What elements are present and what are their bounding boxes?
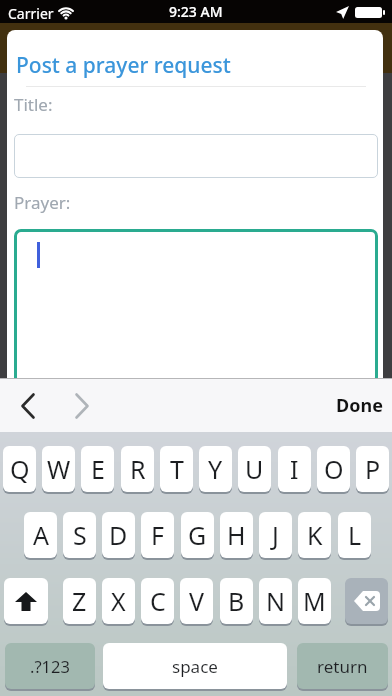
staticText: A xyxy=(33,518,49,552)
button[interactable]: space xyxy=(103,643,287,689)
staticText: R xyxy=(130,452,146,486)
staticText: L xyxy=(348,518,362,552)
staticText: Prayer: xyxy=(14,191,71,214)
button[interactable]: T xyxy=(160,446,193,492)
staticText: K xyxy=(307,518,323,552)
button[interactable]: D xyxy=(102,512,135,558)
button[interactable]: O xyxy=(317,446,350,492)
button[interactable]: .?123 xyxy=(5,643,95,689)
button[interactable]: P xyxy=(356,446,389,492)
staticText: H xyxy=(227,518,246,552)
staticText: .?123 xyxy=(30,655,70,677)
staticText: Y xyxy=(208,452,223,486)
button[interactable]: N xyxy=(259,578,292,624)
button[interactable]: C xyxy=(141,578,174,624)
staticText: B xyxy=(228,584,245,618)
staticText: J xyxy=(272,518,279,552)
button[interactable]: W xyxy=(42,446,75,492)
button[interactable] xyxy=(14,229,378,378)
button[interactable] xyxy=(66,386,98,426)
button[interactable]: L xyxy=(338,512,371,558)
button[interactable]: A xyxy=(24,512,57,558)
button[interactable]: Z xyxy=(63,578,96,624)
staticText: W xyxy=(47,452,71,486)
button[interactable]: X xyxy=(102,578,135,624)
staticText: Title: xyxy=(14,93,53,116)
staticText: space xyxy=(172,655,218,678)
button[interactable]: Q xyxy=(3,446,36,492)
button[interactable]: S xyxy=(63,512,96,558)
button[interactable]: B xyxy=(220,578,253,624)
staticText: P xyxy=(365,452,381,486)
staticText: D xyxy=(109,518,128,552)
staticText: Post a prayer request xyxy=(16,51,231,80)
button[interactable]: Y xyxy=(199,446,232,492)
staticText: F xyxy=(151,518,164,552)
staticText: X xyxy=(111,584,126,618)
button[interactable]: H xyxy=(220,512,253,558)
button[interactable]: J xyxy=(259,512,292,558)
staticText: I xyxy=(290,452,299,486)
staticText: T xyxy=(170,452,184,486)
button[interactable]: F xyxy=(141,512,174,558)
button[interactable]: V xyxy=(180,578,213,624)
button[interactable]: I xyxy=(278,446,311,492)
staticText: 9:23 AM xyxy=(169,2,223,21)
staticText: C xyxy=(150,584,166,618)
staticText: M xyxy=(303,584,326,618)
button[interactable] xyxy=(14,134,378,178)
staticText: return xyxy=(317,655,368,678)
button[interactable]: return xyxy=(297,643,388,689)
staticText: Done xyxy=(336,393,383,418)
staticText: Q xyxy=(10,452,30,486)
button[interactable]: G xyxy=(181,512,214,558)
staticText: N xyxy=(266,584,286,618)
button[interactable]: M xyxy=(298,578,331,624)
staticText: V xyxy=(189,584,205,618)
button[interactable] xyxy=(12,386,44,426)
staticText: U xyxy=(245,452,264,486)
button[interactable]: Done xyxy=(326,378,392,432)
staticText: O xyxy=(324,452,344,486)
button[interactable]: R xyxy=(121,446,154,492)
button[interactable]: K xyxy=(298,512,331,558)
staticText: E xyxy=(91,452,105,486)
button[interactable] xyxy=(4,578,48,624)
staticText: G xyxy=(188,518,207,552)
button[interactable] xyxy=(345,578,388,624)
staticText: S xyxy=(73,518,87,552)
button[interactable]: U xyxy=(238,446,271,492)
staticText: Carrier xyxy=(8,4,54,23)
staticText: Z xyxy=(72,584,87,618)
button[interactable]: E xyxy=(81,446,114,492)
